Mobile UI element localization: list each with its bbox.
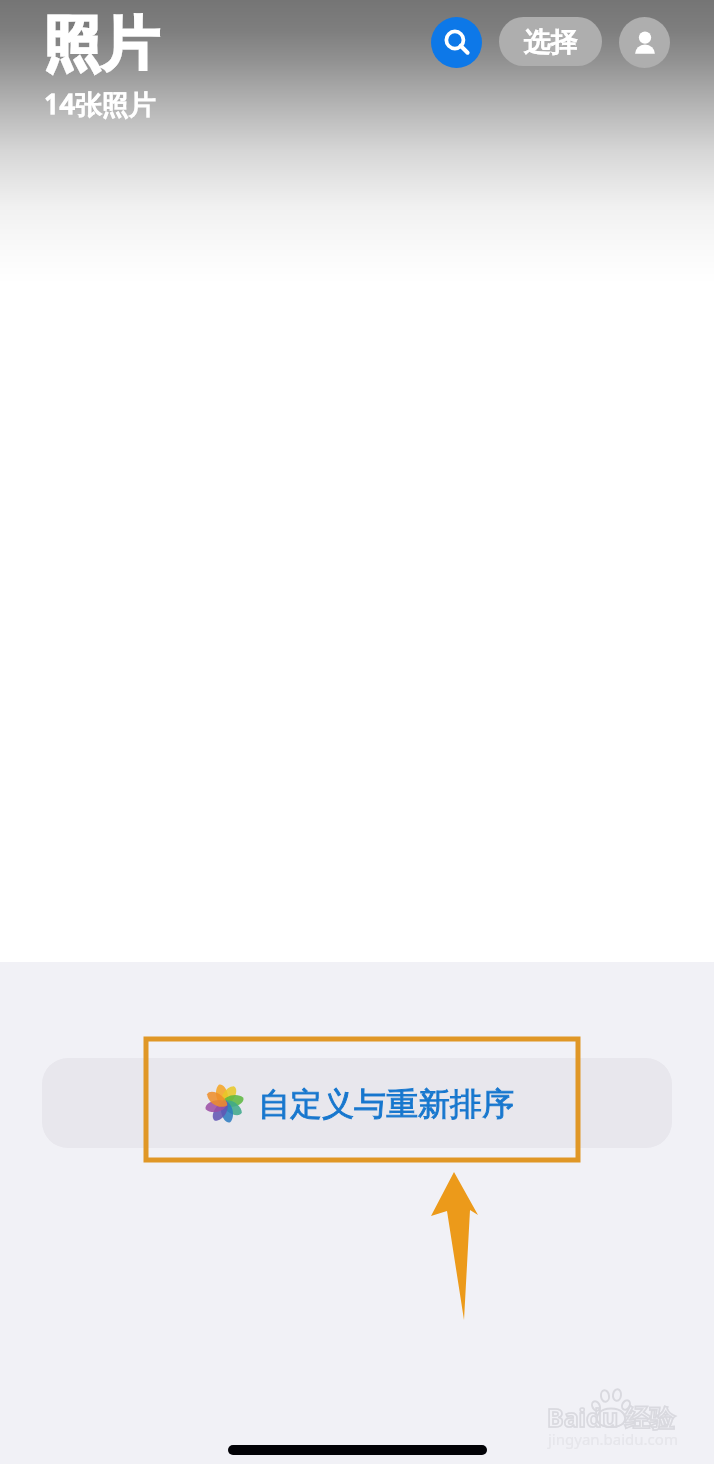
button[interactable]: 账户 — [619, 17, 670, 68]
staticText: 选择 — [524, 25, 578, 59]
staticText: 自定义与重新排序 — [258, 1084, 514, 1124]
staticText: 选择 — [524, 25, 578, 59]
staticText: 自定义与重新排序 — [258, 1084, 514, 1124]
button[interactable]: 搜索 — [431, 17, 482, 68]
staticText: 照片 — [43, 8, 159, 81]
staticText: jingyan.baidu.com — [548, 1429, 678, 1449]
staticText: 14张照片 — [44, 85, 156, 122]
staticText: 14张照片 — [44, 85, 156, 122]
staticText: 照片 — [43, 8, 159, 81]
staticText: Baidu 经验 — [547, 1400, 675, 1434]
button[interactable]: 选择 — [499, 17, 602, 66]
button[interactable]: 自定义与重新排序 — [42, 1058, 672, 1148]
